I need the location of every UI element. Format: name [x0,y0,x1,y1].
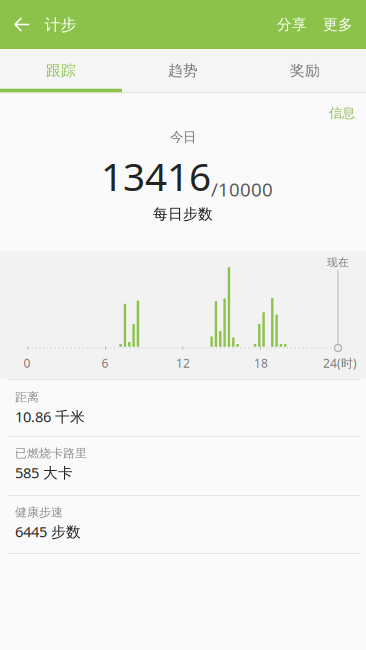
staticText: 距离 [15,390,39,405]
button[interactable]: 奖励 [244,49,366,92]
button[interactable]: Back [5,0,39,49]
button[interactable]: 已燃烧卡路里 [0,436,366,495]
staticText: 每日步数 [153,205,213,223]
staticText: 今日 [170,129,196,145]
staticText: 6445 步数 [15,522,81,541]
staticText: 奖励 [290,61,320,79]
button[interactable]: 分享 [269,0,315,49]
staticText: 计步 [44,15,76,35]
button[interactable]: 趋势 [122,49,244,92]
button[interactable]: 健康步速 [0,495,366,553]
staticText: 18 [254,355,268,371]
staticText: 分享 [277,15,307,33]
staticText: 更多 [323,15,353,33]
staticText: /10000 [211,177,273,202]
staticText: 现在 [327,256,349,269]
staticText: 12 [176,355,190,371]
button[interactable]: 跟踪 [0,49,122,92]
button[interactable]: 信息 [317,98,366,128]
staticText: 24(时) [323,355,357,371]
staticText: 13416 [101,150,211,202]
staticText: 已燃烧卡路里 [15,446,87,461]
staticText: 健康步速 [15,505,63,520]
button[interactable]: 距离 [0,380,366,436]
staticText: 趋势 [168,61,198,79]
staticText: 0 [23,355,30,371]
staticText: 跟踪 [46,61,76,79]
staticText: 585 大卡 [15,463,73,482]
button[interactable]: 更多 [315,0,361,49]
staticText: 6 [101,355,108,371]
staticText: 10.86 千米 [15,407,85,426]
staticText: 信息 [329,105,355,121]
